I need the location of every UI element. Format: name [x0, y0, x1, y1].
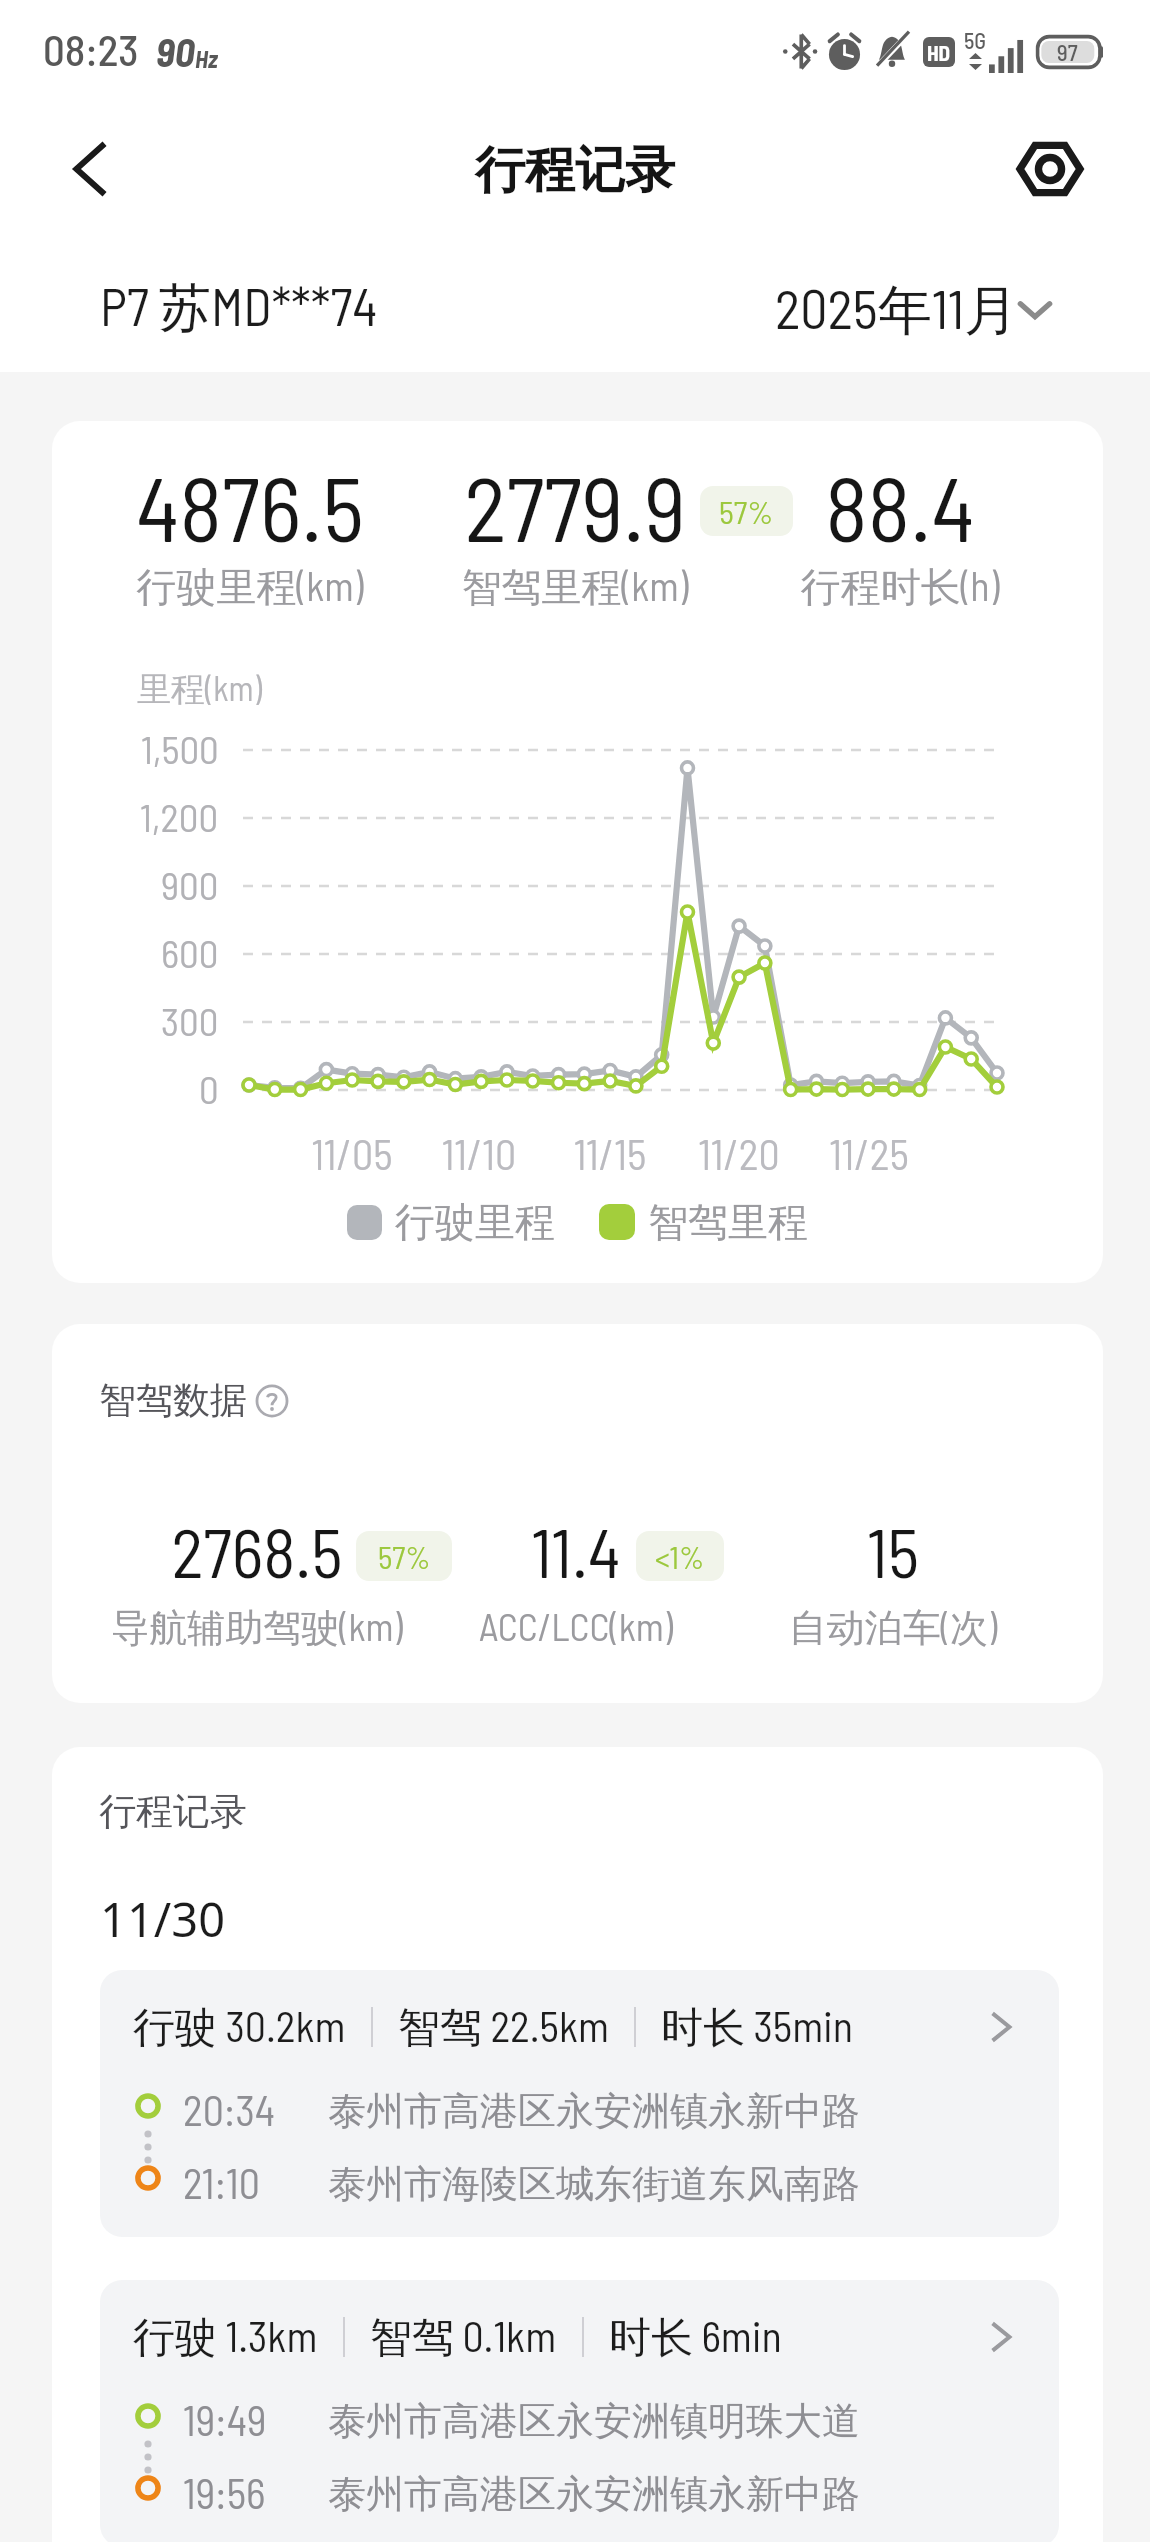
button[interactable]: 2025年11月 — [775, 275, 1052, 345]
button[interactable]: 行驶 1.3km — [100, 2280, 1059, 2542]
staticText: 11/15 — [530, 1128, 690, 1178]
staticText: 行驶 30.2km — [133, 2000, 346, 2054]
staticText: 15 — [663, 1510, 1103, 1592]
staticText: 19:56 — [183, 2467, 266, 2517]
staticText: 11/20 — [659, 1128, 819, 1178]
staticText: 时长 35min — [661, 2000, 854, 2054]
staticText: 19:49 — [183, 2394, 267, 2444]
staticText: 泰州市高港区永安洲镇明珠大道 — [328, 2397, 860, 2445]
staticText: 1,200 — [140, 793, 219, 840]
staticText: 智驾数据 — [99, 1377, 247, 1424]
staticText: 97 — [1057, 38, 1078, 66]
staticText: 21:10 — [183, 2157, 260, 2207]
staticText: 11/10 — [399, 1128, 559, 1178]
staticText: 智驾里程(km) — [295, 561, 855, 613]
staticText: 600 — [161, 929, 219, 976]
staticText: HD — [927, 40, 951, 65]
staticText: 57% — [719, 492, 774, 530]
staticText: 1,500 — [141, 725, 219, 772]
staticText: 11/30 — [100, 1887, 226, 1951]
staticText: 4876.5 — [52, 452, 480, 560]
staticText: 智驾里程 — [648, 1197, 808, 1247]
staticText: 88.4 — [670, 452, 1103, 560]
staticText: 300 — [161, 997, 219, 1044]
staticText: 智驾 22.5km — [398, 2000, 609, 2054]
staticText: 里程(km) — [137, 667, 262, 711]
staticText: Hz — [195, 44, 218, 73]
staticText: 泰州市高港区永安洲镇永新中路 — [328, 2087, 860, 2135]
staticText: 行程记录 — [0, 139, 1150, 202]
staticText: 08:23 — [43, 23, 139, 75]
staticText: 行驶 1.3km — [133, 2310, 318, 2364]
staticText: 2779.9 — [345, 452, 805, 560]
staticText: <1% — [655, 1538, 705, 1575]
button[interactable]: Settings — [1012, 131, 1088, 207]
staticText: 导航辅助驾驶(km) — [52, 1603, 537, 1652]
staticText: 0 — [199, 1065, 219, 1112]
staticText: 自动泊车(次) — [613, 1603, 1103, 1652]
staticText: 时长 6min — [609, 2310, 782, 2364]
staticText: 57% — [378, 1538, 431, 1575]
staticText: 90 — [156, 27, 195, 75]
button[interactable]: Back — [52, 131, 128, 207]
staticText: 2768.5 — [52, 1510, 487, 1592]
staticText: 行程记录 — [99, 1788, 247, 1835]
staticText: 5G — [964, 27, 987, 53]
staticText: P7 苏MD***74 — [100, 274, 378, 341]
staticText: 泰州市高港区永安洲镇永新中路 — [328, 2470, 860, 2518]
staticText: 11/05 — [272, 1128, 432, 1178]
staticText: 行驶里程 — [395, 1197, 555, 1247]
staticText: ACC/LCC(km) — [296, 1603, 856, 1649]
staticText: 行程时长(h) — [620, 561, 1103, 613]
staticText: 900 — [161, 861, 219, 908]
staticText: 11/25 — [789, 1128, 949, 1178]
staticText: 泰州市海陵区城东街道东风南路 — [328, 2160, 860, 2208]
staticText: 2025年11月 — [775, 275, 1018, 345]
staticText: 智驾 0.1km — [370, 2310, 557, 2364]
staticText: 行驶里程(km) — [52, 561, 530, 613]
staticText: 11.4 — [346, 1510, 806, 1592]
staticText: 20:34 — [183, 2084, 276, 2134]
button[interactable]: 行驶 30.2km — [100, 1970, 1059, 2237]
